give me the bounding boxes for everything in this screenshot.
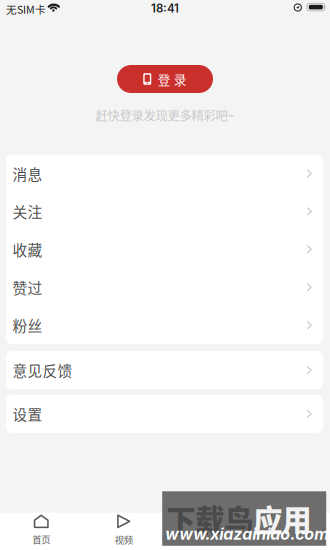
staticText: 登 录 [158,70,187,88]
button[interactable]: 关注 [6,192,323,230]
staticText: 收藏 [12,239,42,260]
button[interactable]: 收藏 [6,230,323,268]
staticText: www.xiazainiao.com [165,524,329,544]
button[interactable]: 消息 [6,155,323,192]
button[interactable]: 首页 [0,513,82,550]
staticText: 赶快登录发现更多精彩吧~ [95,106,234,124]
staticText: 意见反馈 [12,359,72,381]
button[interactable]: 赞过 [6,268,323,306]
staticText: 应用 [253,497,311,540]
staticText: 设置 [12,403,42,424]
staticText: 赞过 [12,277,42,298]
staticText: 18:41 [151,1,179,15]
staticText: 粉丝 [12,314,42,336]
staticText: 消息 [12,163,42,184]
button[interactable]: 粉丝 [6,306,323,344]
button[interactable]: 设置 [6,395,323,433]
button[interactable]: 视频 [82,513,165,550]
staticText: 视频 [115,533,133,546]
button[interactable]: 登 录 [117,65,213,93]
button[interactable]: 意见反馈 [6,351,323,389]
staticText: 关注 [12,201,42,222]
staticText: 无SIM卡 [6,1,46,17]
staticText: 下载鸟 [166,497,253,540]
staticText: 首页 [32,532,50,546]
